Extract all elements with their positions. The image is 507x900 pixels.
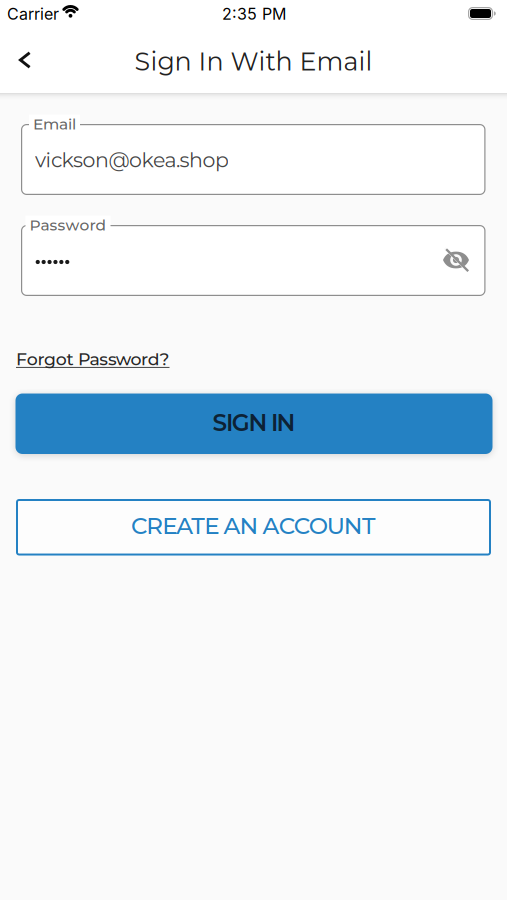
staticText: Email — [33, 115, 76, 133]
button[interactable]: Back — [5, 36, 45, 84]
staticText: CREATE AN ACCOUNT — [131, 512, 376, 540]
staticText: Carrier — [7, 4, 59, 24]
button[interactable]: Show password — [432, 239, 480, 281]
button[interactable]: CREATE AN ACCOUNT — [16, 499, 491, 555]
staticText: vickson@okea.shop — [35, 147, 229, 172]
staticText: SIGN IN — [212, 409, 296, 437]
staticText: Forgot Password? — [16, 348, 169, 370]
staticText: Password — [29, 216, 106, 234]
button[interactable]: SIGN IN — [15, 393, 492, 454]
staticText: Sign In With Email — [134, 46, 372, 77]
button[interactable]: Forgot Password? — [16, 348, 169, 370]
staticText: 2:35 PM — [222, 4, 286, 24]
